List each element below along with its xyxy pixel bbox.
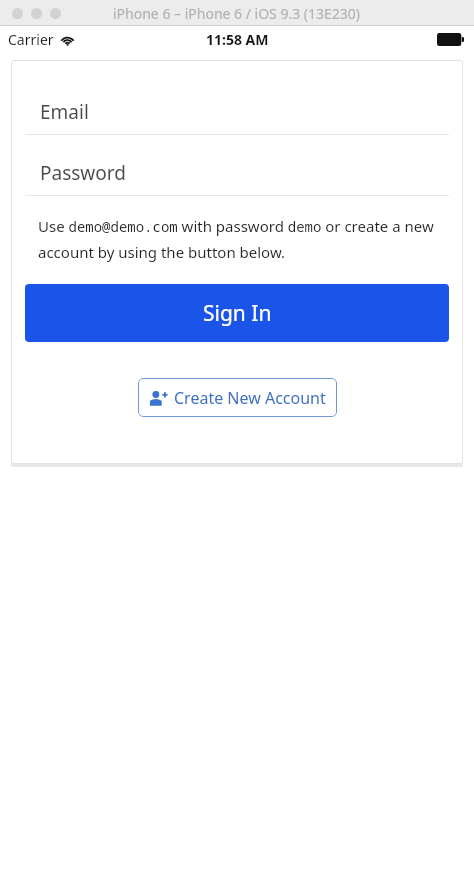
staticText: Use demo@demo.com with password demo or … (38, 216, 439, 263)
other: Create new account (149, 390, 168, 406)
button[interactable]: Email (11, 90, 463, 135)
staticText: Carrier (8, 30, 54, 49)
staticText: Sign In (203, 299, 272, 328)
button[interactable]: Sign In (25, 284, 449, 342)
staticText: Email (40, 99, 89, 125)
staticText: iPhone 6 – iPhone 6 / iOS 9.3 (13E230) (113, 4, 361, 23)
button[interactable]: Create new account (138, 378, 337, 417)
button[interactable]: Password (11, 151, 463, 196)
staticText: Create New Account (174, 387, 326, 409)
staticText: 11:58 AM (206, 30, 269, 49)
staticText: Password (40, 160, 126, 186)
